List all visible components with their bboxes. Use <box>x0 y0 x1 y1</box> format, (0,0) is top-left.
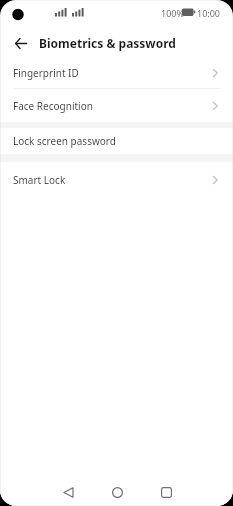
staticText: Fingerprint ID <box>13 66 79 80</box>
button[interactable]: Smart Lock <box>0 162 233 198</box>
button[interactable]: Face Recognition <box>0 89 233 122</box>
button[interactable] <box>98 473 136 506</box>
staticText: Lock screen password <box>13 134 116 148</box>
button[interactable]: Fingerprint ID <box>0 58 233 88</box>
button[interactable]: Lock screen password <box>0 128 233 154</box>
button[interactable] <box>147 473 185 506</box>
staticText: 100% <box>161 7 184 19</box>
staticText: Face Recognition <box>13 99 93 113</box>
staticText: Biometrics & password <box>39 35 176 51</box>
staticText: Smart Lock <box>13 173 66 187</box>
staticText: 10:00 <box>197 7 221 19</box>
button[interactable] <box>49 473 87 506</box>
button[interactable] <box>15 31 39 55</box>
